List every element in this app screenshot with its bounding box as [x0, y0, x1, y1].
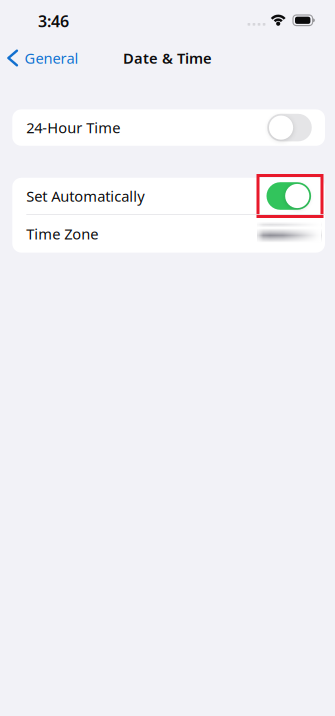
button[interactable]: Time Zone	[12, 215, 325, 253]
button[interactable]: 24-Hour Time	[267, 114, 312, 142]
staticText: Date & Time	[123, 48, 212, 68]
staticText: Time Zone	[26, 224, 98, 244]
staticText: 3:46	[38, 10, 69, 32]
staticText: Set Automatically	[26, 186, 144, 206]
staticText: 24-Hour Time	[26, 118, 120, 137]
button[interactable]: Set Automatically	[258, 175, 322, 216]
button[interactable]: General	[0, 48, 84, 68]
staticText: General	[24, 48, 78, 68]
